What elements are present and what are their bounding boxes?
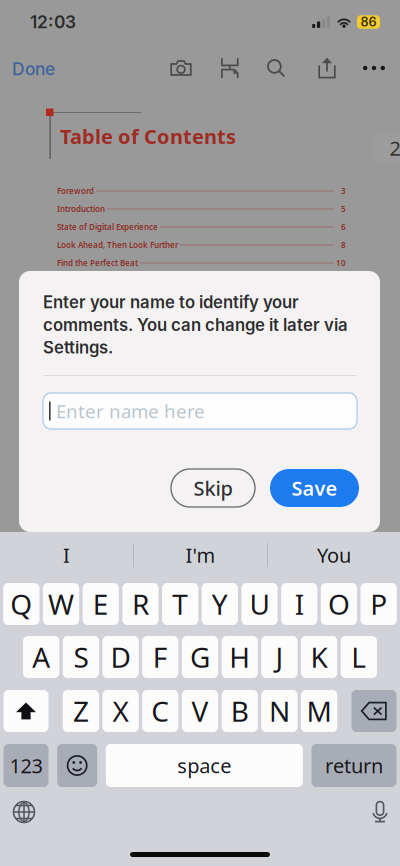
- staticText: Save: [291, 475, 337, 501]
- staticText: M: [307, 692, 332, 730]
- staticText: U: [249, 585, 269, 623]
- staticText: You: [317, 542, 351, 568]
- button[interactable]: Q: [3, 583, 39, 625]
- staticText: H: [229, 638, 250, 676]
- button[interactable]: You: [268, 532, 400, 578]
- staticText: 10: [336, 258, 346, 268]
- staticText: Skip: [193, 475, 232, 501]
- staticText: L: [351, 638, 366, 676]
- staticText: I: [295, 585, 304, 623]
- staticText: Enter your name to identify your comment…: [43, 291, 348, 359]
- button[interactable]: Search: [254, 46, 298, 90]
- button[interactable]: space: [106, 744, 303, 787]
- staticText: Q: [10, 585, 32, 623]
- staticText: J: [275, 638, 283, 676]
- button[interactable]: H: [221, 636, 258, 678]
- staticText: K: [311, 638, 328, 676]
- staticText: R: [132, 585, 149, 623]
- staticText: Find the Perfect Beat: [57, 258, 138, 268]
- button[interactable]: Delete: [351, 690, 396, 732]
- button[interactable]: T: [162, 583, 198, 625]
- staticText: V: [191, 692, 208, 730]
- button[interactable]: F: [142, 636, 178, 678]
- staticText: E: [93, 585, 109, 623]
- button[interactable]: A: [23, 636, 59, 678]
- staticText: F: [153, 638, 168, 676]
- staticText: 6: [341, 222, 346, 232]
- staticText: T: [172, 585, 188, 623]
- button[interactable]: D: [102, 636, 139, 678]
- button[interactable]: I: [0, 532, 133, 578]
- button[interactable]: Shift: [3, 690, 48, 732]
- staticText: G: [190, 638, 210, 676]
- button[interactable]: R: [122, 583, 159, 625]
- staticText: B: [231, 692, 249, 730]
- button[interactable]: W: [43, 583, 79, 625]
- staticText: Done: [12, 58, 55, 79]
- button[interactable]: return: [311, 744, 396, 787]
- button[interactable]: N: [261, 690, 297, 732]
- staticText: O: [328, 585, 350, 623]
- staticText: 8: [341, 240, 346, 250]
- staticText: X: [113, 692, 129, 730]
- staticText: P: [370, 585, 387, 623]
- button[interactable]: B: [221, 690, 258, 732]
- staticText: Enter name here: [56, 399, 205, 423]
- staticText: 86: [360, 14, 376, 30]
- button[interactable]: Y: [202, 583, 238, 625]
- staticText: State of Digital Experience: [57, 222, 158, 232]
- button[interactable]: More: [352, 46, 396, 90]
- staticText: 123: [9, 752, 42, 779]
- button[interactable]: G: [182, 636, 218, 678]
- button[interactable]: O: [321, 583, 357, 625]
- staticText: D: [111, 638, 131, 676]
- button[interactable]: Skip: [171, 469, 255, 507]
- staticText: I'm: [185, 542, 215, 568]
- staticText: Z: [73, 692, 89, 730]
- button[interactable]: I: [281, 583, 317, 625]
- button[interactable]: Emoji: [57, 744, 97, 787]
- staticText: return: [325, 752, 383, 779]
- staticText: Y: [212, 585, 228, 623]
- staticText: Look Ahead, Then Look Further: [57, 240, 178, 250]
- button[interactable]: P: [360, 583, 397, 625]
- button[interactable]: J: [261, 636, 297, 678]
- button[interactable]: Save: [270, 469, 359, 507]
- button[interactable]: K: [301, 636, 337, 678]
- button[interactable]: Dictation: [358, 790, 400, 834]
- staticText: N: [269, 692, 290, 730]
- button[interactable]: M: [301, 690, 337, 732]
- staticText: W: [48, 585, 74, 623]
- button[interactable]: C: [142, 690, 178, 732]
- button[interactable]: Markup: [208, 46, 252, 90]
- staticText: 2: [389, 135, 400, 161]
- staticText: Table of Contents: [60, 123, 236, 150]
- staticText: 12:03: [30, 11, 76, 32]
- button[interactable]: L: [341, 636, 377, 678]
- staticText: C: [151, 692, 169, 730]
- staticText: Foreword: [57, 186, 94, 196]
- button[interactable]: E: [83, 583, 119, 625]
- button[interactable]: X: [102, 690, 139, 732]
- button[interactable]: U: [241, 583, 278, 625]
- staticText: S: [73, 638, 88, 676]
- staticText: I: [63, 542, 70, 568]
- staticText: space: [177, 752, 231, 779]
- button[interactable]: Done: [12, 47, 68, 91]
- button[interactable]: I'm: [134, 532, 267, 578]
- staticText: A: [32, 638, 50, 676]
- button[interactable]: Z: [63, 690, 99, 732]
- button[interactable]: Camera: [159, 46, 203, 90]
- button[interactable]: S: [63, 636, 99, 678]
- button[interactable]: 123: [3, 744, 48, 787]
- button[interactable]: V: [182, 690, 218, 732]
- button[interactable]: Share: [305, 46, 349, 90]
- staticText: 5: [341, 204, 346, 214]
- staticText: Introduction: [57, 204, 105, 214]
- button[interactable]: Next keyboard: [2, 790, 46, 834]
- staticText: 3: [341, 186, 346, 196]
